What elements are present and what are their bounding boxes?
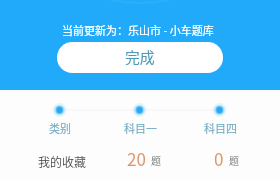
staticText: 0 — [214, 146, 224, 171]
button[interactable]: 科目四 — [180, 100, 260, 134]
staticText: 我的收藏 — [38, 153, 87, 170]
button[interactable]: 科目一收藏 20 题 — [102, 146, 182, 174]
button[interactable]: 我的收藏 — [22, 146, 102, 174]
staticText: 类别 — [49, 120, 71, 136]
staticText: 20 — [127, 146, 146, 171]
staticText: 科目一 — [124, 120, 157, 136]
staticText: 科目四 — [204, 120, 237, 136]
button[interactable]: 完成 — [57, 42, 223, 73]
staticText: 题 — [151, 153, 161, 167]
staticText: 题 — [229, 153, 239, 167]
staticText: 当前更新为：乐山市 - 小车题库 — [62, 22, 214, 38]
button[interactable]: 类别 — [20, 100, 100, 134]
button[interactable]: 科目一 — [100, 100, 180, 134]
staticText: 完成 — [125, 46, 155, 67]
button[interactable]: 科目四收藏 0 题 — [180, 146, 260, 174]
